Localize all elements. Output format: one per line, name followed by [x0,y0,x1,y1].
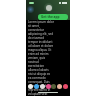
staticText: Lorem ipsum dolor sit amet, consectetur … [28,20,54,96]
staticText: Get the app [41,15,60,19]
button[interactable]: Share target [34,84,39,89]
button[interactable]: Get the app [38,14,68,20]
button[interactable]: Share target [40,84,45,89]
button[interactable]: Share target [57,84,62,89]
button[interactable]: Share target [51,84,56,89]
button[interactable]: Share target [46,84,51,89]
button[interactable]: Profile [46,5,52,11]
button[interactable]: Share target [28,84,33,89]
button[interactable]: Share target [63,84,68,89]
